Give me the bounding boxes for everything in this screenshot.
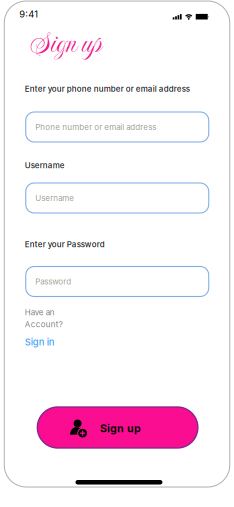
staticText: Username	[25, 160, 65, 170]
staticText: Password	[35, 277, 71, 286]
textField[interactable]: Username	[35, 193, 209, 203]
staticText: Sign up	[100, 422, 141, 435]
staticText: Enter your Password	[25, 239, 105, 249]
textField[interactable]: Password	[35, 277, 209, 286]
button[interactable]: Sign in	[25, 336, 55, 347]
staticText: Username	[35, 193, 74, 203]
staticText: Phone number or email address	[35, 122, 156, 132]
staticText: Enter your phone number or email address	[25, 84, 190, 93]
staticText: Sign up	[31, 23, 100, 62]
button[interactable]: Sign up	[37, 407, 198, 448]
staticText: Have an Account?	[25, 307, 63, 329]
textField[interactable]: Phone number or email address	[35, 122, 209, 132]
staticText: Sign in	[25, 336, 55, 347]
staticText: 9:41	[19, 8, 38, 19]
